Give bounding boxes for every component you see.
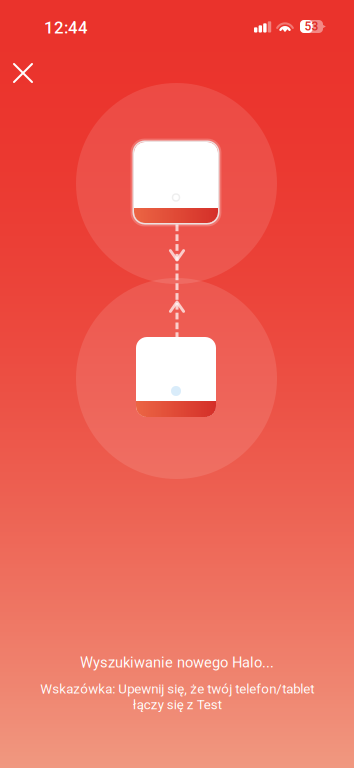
staticText: 53 — [304, 19, 318, 34]
staticText: 12:44 — [44, 18, 88, 38]
staticText: Wyszukiwanie nowego Halo... — [80, 654, 274, 671]
button[interactable]: Close — [9, 59, 53, 103]
staticText: Wskazówka: Upewnij się, że twój telefon/… — [40, 681, 314, 712]
